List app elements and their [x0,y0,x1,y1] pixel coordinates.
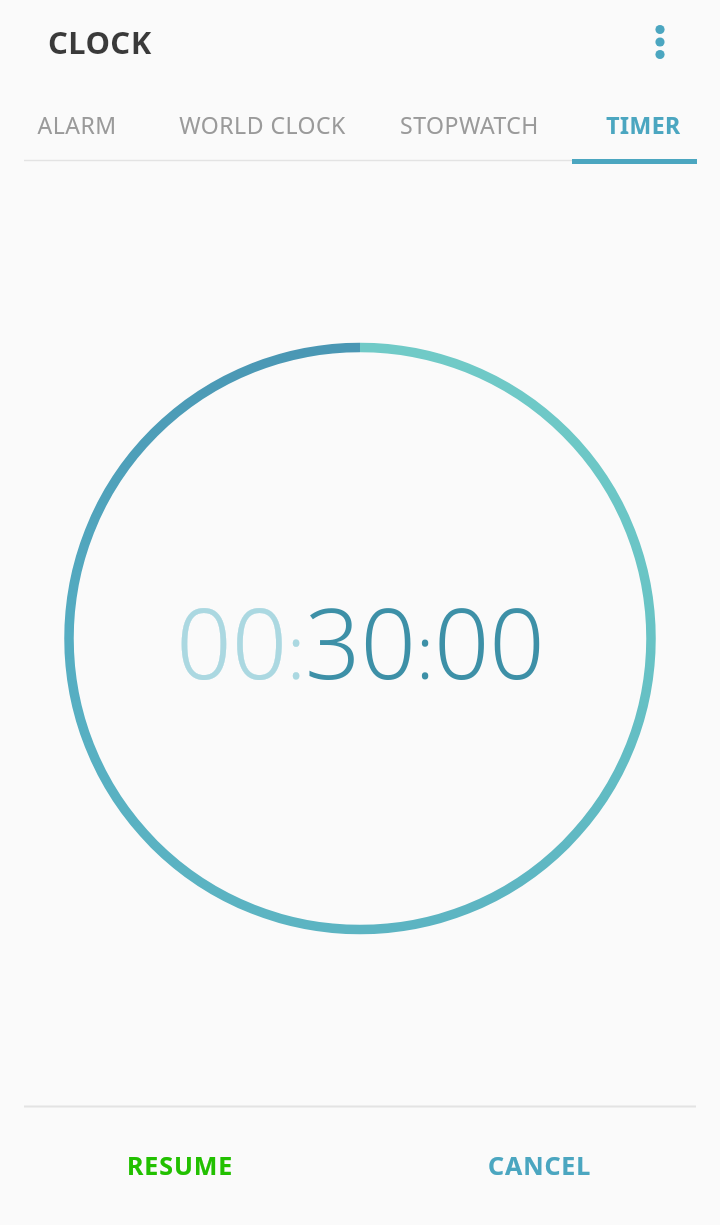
button[interactable]: TIMER [567,84,720,165]
staticText: RESUME [127,1148,234,1182]
button[interactable]: CANCEL [360,1105,720,1225]
staticText: TIMER [606,109,681,140]
button[interactable]: RESUME [0,1105,360,1225]
staticText: STOPWATCH [400,109,539,140]
staticText: CANCEL [488,1148,592,1182]
staticText: 00:30:00 [176,575,545,707]
button[interactable]: More options [636,18,684,66]
button[interactable]: WORLD CLOCK [153,84,371,165]
button[interactable]: ALARM [0,84,153,165]
staticText: CLOCK [48,21,152,63]
staticText: WORLD CLOCK [179,109,346,140]
button[interactable]: STOPWATCH [371,84,567,165]
staticText: ALARM [37,109,117,140]
